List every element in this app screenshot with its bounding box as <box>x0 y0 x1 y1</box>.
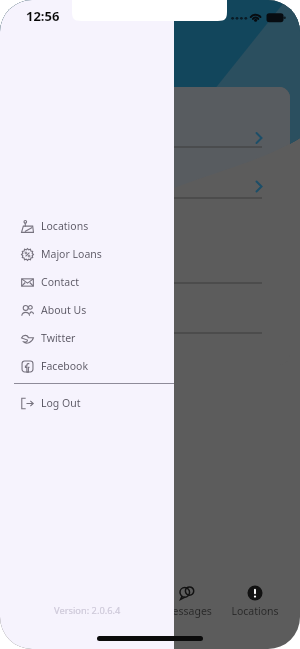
staticText: Version: 2.0.6.4 <box>54 604 121 617</box>
staticText: Log Out <box>41 396 81 410</box>
button[interactable]: Log Out <box>0 389 174 417</box>
staticText: About Us <box>41 303 87 317</box>
staticText: Locations <box>231 604 279 618</box>
staticText: Messages <box>163 604 212 618</box>
staticText: Accounts <box>96 604 141 618</box>
button[interactable]: Locations <box>225 585 285 618</box>
button[interactable]: Contact <box>0 268 174 296</box>
button[interactable]: Facebook <box>0 352 174 380</box>
button[interactable]: Accounts <box>88 585 148 618</box>
button[interactable]: Locations <box>0 212 174 240</box>
button[interactable]: Messages <box>157 585 217 618</box>
button[interactable]: Major Loans <box>0 240 174 268</box>
button[interactable]: About Us <box>0 296 174 324</box>
staticText: Major Loans <box>41 247 102 261</box>
staticText: Locations <box>41 219 89 233</box>
button[interactable]: Select branch <box>10 87 290 147</box>
staticText: Home <box>35 604 65 618</box>
button[interactable]: More <box>10 283 290 333</box>
button[interactable]: Select service <box>10 147 290 198</box>
staticText: Contact <box>41 275 79 289</box>
staticText: 12:56 <box>26 7 60 25</box>
button[interactable]: Details <box>10 198 290 283</box>
button[interactable]: Home <box>20 585 80 618</box>
staticText: Twitter <box>41 331 76 345</box>
staticText: Facebook <box>41 359 89 373</box>
button[interactable]: Twitter <box>0 324 174 352</box>
